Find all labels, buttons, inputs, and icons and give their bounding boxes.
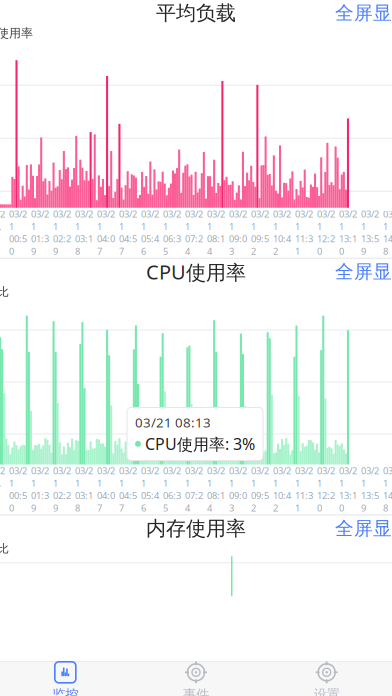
staticText: 03/21 01:39 bbox=[31, 464, 49, 514]
staticText: 全屏显示 bbox=[335, 1, 392, 24]
staticText: 03/21 00:50 bbox=[9, 464, 27, 514]
staticText: 03/21 12:20 bbox=[317, 464, 335, 514]
staticText: 百分比 bbox=[0, 285, 9, 299]
staticText: 03/21 13:59 bbox=[361, 464, 379, 514]
staticText: 设置 bbox=[314, 686, 340, 696]
staticText: 03/21 … bbox=[0, 464, 5, 489]
staticText: 03/21 04:07 bbox=[97, 208, 115, 257]
button[interactable]: 设置 bbox=[261, 655, 392, 696]
staticText: 03/21 08:13 bbox=[135, 413, 211, 431]
staticText: 百分比 bbox=[0, 541, 9, 556]
button[interactable]: 全屏显示 bbox=[329, 514, 392, 543]
staticText: 资源使用率 bbox=[0, 26, 33, 41]
button[interactable]: 监控 bbox=[0, 655, 131, 696]
staticText: 03/21 12:20 bbox=[317, 208, 335, 257]
staticText: 03/21 … bbox=[0, 208, 5, 232]
staticText: 03/21 09:03 bbox=[229, 208, 247, 257]
staticText: 03/21 08:14 bbox=[207, 208, 225, 257]
staticText: 03/21 06:35 bbox=[163, 464, 181, 514]
button[interactable]: 全屏显示 bbox=[329, 0, 392, 27]
staticText: 03/21 02:29 bbox=[53, 208, 71, 257]
staticText: 03/21 06:35 bbox=[163, 208, 181, 257]
staticText: 03/21 10:42 bbox=[273, 464, 291, 514]
staticText: 03/21 05:46 bbox=[141, 464, 159, 514]
staticText: 03/21 04:57 bbox=[119, 464, 137, 514]
staticText: 03/21 02:29 bbox=[53, 464, 71, 514]
staticText: 03/21 10:42 bbox=[273, 208, 291, 257]
staticText: 03/21 13:10 bbox=[339, 208, 357, 257]
staticText: 03/21 00:50 bbox=[9, 208, 27, 257]
staticText: 全屏显示 bbox=[335, 517, 392, 540]
staticText: 03/21 07:24 bbox=[185, 208, 203, 257]
staticText: 03/21 01:39 bbox=[31, 208, 49, 257]
staticText: 03/21 04:57 bbox=[119, 208, 137, 257]
staticText: 03/21 03:18 bbox=[75, 464, 93, 514]
staticText: 03/21 07:24 bbox=[185, 464, 203, 514]
staticText: 03/21 08:14 bbox=[207, 464, 225, 514]
staticText: 03/21 09:03 bbox=[229, 464, 247, 514]
staticText: CPU使用率: 3% bbox=[145, 433, 255, 454]
staticText: 全屏显示 bbox=[335, 260, 392, 283]
staticText: 03/21 14:48 bbox=[383, 208, 392, 257]
staticText: 监控 bbox=[52, 686, 78, 696]
button[interactable]: 全屏显示 bbox=[329, 257, 392, 286]
staticText: 03/21 09:52 bbox=[251, 208, 269, 257]
button[interactable]: 事件 bbox=[131, 655, 261, 696]
staticText: 03/21 11:31 bbox=[295, 464, 313, 514]
staticText: CPU使用率 bbox=[146, 258, 246, 285]
staticText: 03/21 11:31 bbox=[295, 208, 313, 257]
staticText: 事件 bbox=[183, 686, 209, 696]
staticText: 03/21 09:52 bbox=[251, 464, 269, 514]
staticText: 内存使用率 bbox=[146, 516, 246, 541]
staticText: 平均负载 bbox=[156, 1, 236, 25]
staticText: 03/21 13:59 bbox=[361, 208, 379, 257]
staticText: 03/21 14:48 bbox=[383, 464, 392, 514]
staticText: 03/21 04:07 bbox=[97, 464, 115, 514]
staticText: 03/21 05:46 bbox=[141, 208, 159, 257]
staticText: 03/21 13:10 bbox=[339, 464, 357, 514]
staticText: 03/21 03:18 bbox=[75, 208, 93, 257]
